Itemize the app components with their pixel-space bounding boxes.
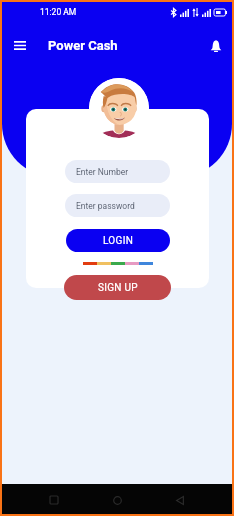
button[interactable]: SIGN UP — [64, 275, 171, 300]
button[interactable]: Back — [169, 489, 191, 511]
button[interactable]: LOGIN — [66, 229, 170, 252]
staticText: SIGN UP — [98, 282, 138, 294]
staticText: LOGIN — [103, 235, 134, 247]
staticText: Power Cash — [48, 38, 118, 53]
button[interactable]: Home — [106, 489, 128, 511]
button[interactable]: Menu — [10, 35, 30, 55]
button[interactable]: Enter password — [65, 194, 170, 217]
staticText: 11:20 AM — [40, 7, 77, 17]
staticText: Enter password — [76, 201, 135, 211]
button[interactable]: Enter Number — [65, 160, 170, 183]
staticText: Enter Number — [76, 167, 129, 177]
button[interactable]: Recent apps — [43, 489, 65, 511]
button[interactable]: Notifications — [206, 36, 226, 56]
